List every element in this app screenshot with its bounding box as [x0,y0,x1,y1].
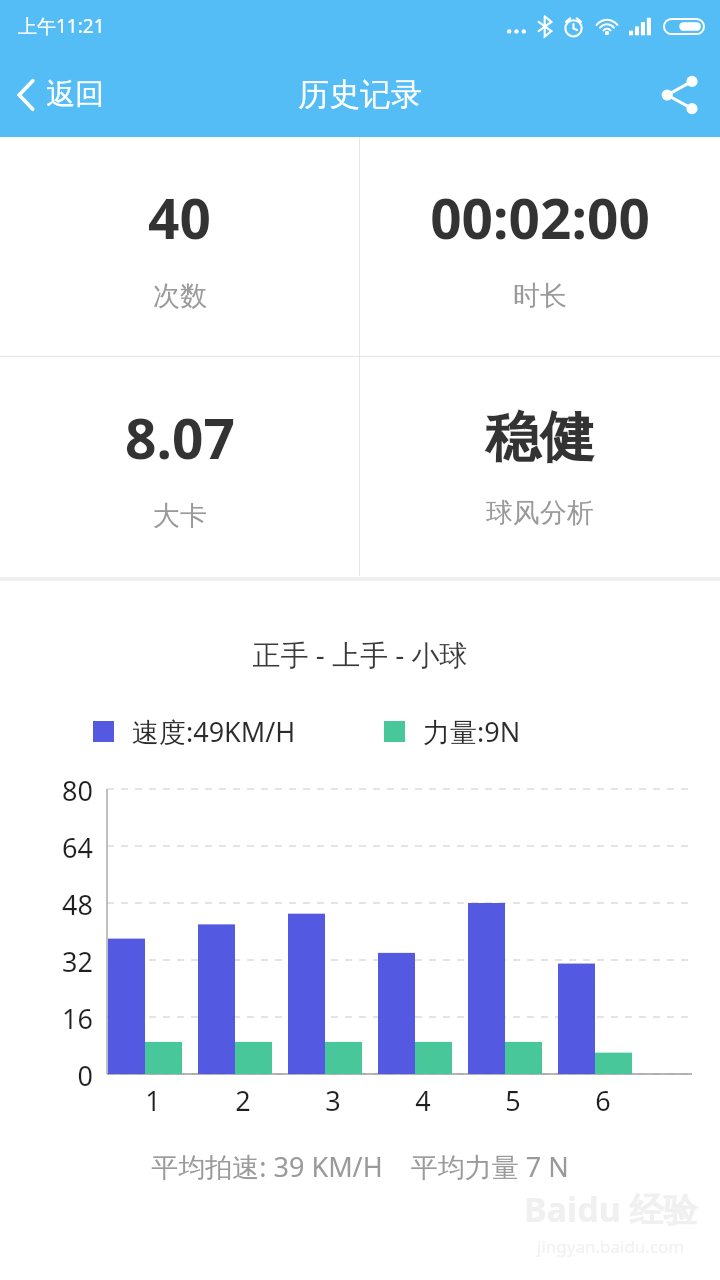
staticText: 返回 [46,76,104,113]
button[interactable]: 00:02:00 [360,137,720,356]
staticText: jingyan.baidu.com [537,1235,685,1258]
staticText: 8.07 [125,400,235,475]
staticText: 力量:9N [423,713,521,750]
staticText: 6 [558,1082,648,1119]
staticText: 时长 [513,279,567,313]
staticText: 次数 [153,279,207,313]
staticText: 1 [108,1082,198,1119]
staticText: 大卡 [153,499,207,533]
staticText: 平均拍速: 39 KM/H 平均力量 7 N [0,1148,720,1185]
button[interactable]: Share [640,59,720,131]
staticText: 球风分析 [486,496,594,530]
staticText: 正手 - 上手 - 小球 [0,635,720,673]
staticText: 上午11:21 [18,13,105,39]
button[interactable]: 8.07 [0,357,359,576]
button[interactable]: 返回 [0,52,124,137]
staticText: 2 [198,1082,288,1119]
staticText: 64 [0,829,93,866]
staticText: 40 [148,180,211,255]
staticText: 16 [0,1000,93,1037]
staticText: 3 [288,1082,378,1119]
staticText: 48 [0,886,93,923]
staticText: 00:02:00 [430,180,650,255]
button[interactable]: 40 [0,137,359,356]
staticText: 80 [0,772,93,809]
staticText: 速度:49KM/H [132,713,296,750]
staticText: 4 [378,1082,468,1119]
staticText: 稳健 [485,403,595,472]
staticText: 历史记录 [298,75,422,114]
staticText: 32 [0,943,93,980]
button[interactable]: 稳健 [360,357,720,576]
staticText: Baidu 经验 [524,1186,698,1232]
staticText: 5 [468,1082,558,1119]
staticText: 0 [0,1057,93,1094]
